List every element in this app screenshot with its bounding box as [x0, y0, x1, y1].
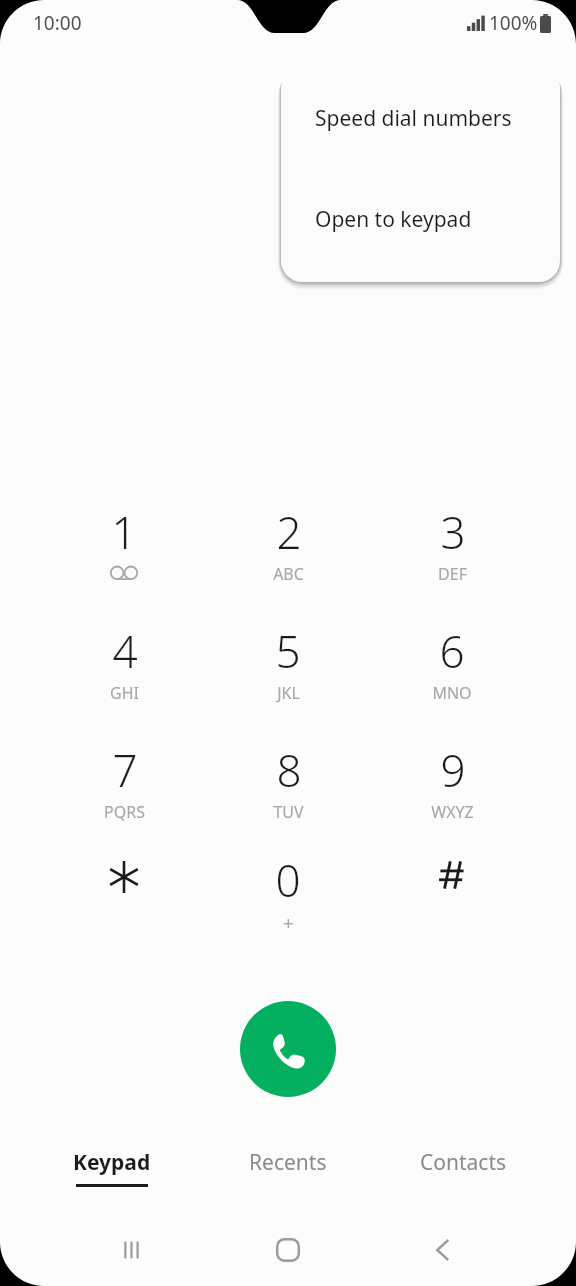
staticText: 5 [275, 621, 301, 681]
staticText: 0 [275, 850, 301, 910]
staticText: TUV [273, 801, 304, 823]
button[interactable]: Settings [281, 234, 560, 282]
staticText: 1 [111, 502, 137, 562]
button[interactable]: Back [415, 1222, 471, 1278]
staticText: 10:00 [33, 10, 82, 36]
button[interactable]: Pound [377, 850, 527, 962]
button[interactable]: 0 [213, 850, 363, 962]
staticText: 3 [440, 502, 466, 562]
button[interactable]: Home [260, 1222, 316, 1278]
staticText: DEF [438, 563, 467, 585]
staticText: 4 [112, 621, 138, 681]
button[interactable]: 3 [377, 502, 527, 614]
staticText: 100% [489, 10, 538, 36]
staticText: WXYZ [431, 801, 474, 823]
button[interactable]: 2 [213, 502, 363, 614]
button[interactable]: 4 [49, 621, 199, 733]
staticText: Open to keypad [315, 205, 472, 234]
staticText: 9 [440, 740, 466, 800]
button[interactable]: 9 [377, 740, 527, 852]
button[interactable]: 5 [213, 621, 363, 733]
button[interactable]: Star [49, 850, 199, 962]
button[interactable]: Contacts [375, 1148, 551, 1206]
button[interactable]: Recents [200, 1148, 376, 1206]
staticText: ABC [273, 563, 304, 585]
button[interactable]: 7 [49, 740, 199, 852]
staticText: + [283, 911, 294, 936]
button[interactable]: 6 [377, 621, 527, 733]
button[interactable]: Keypad [24, 1148, 200, 1206]
button[interactable]: 8 [213, 740, 363, 852]
staticText: Contacts [420, 1148, 507, 1177]
button[interactable]: Speed dial numbers [281, 66, 560, 133]
staticText: 2 [276, 502, 302, 562]
staticText: PQRS [104, 801, 145, 823]
button[interactable]: Call [240, 1001, 336, 1097]
staticText: 7 [112, 740, 138, 800]
staticText: 8 [276, 740, 302, 800]
staticText: Speed dial numbers [315, 104, 512, 133]
button[interactable]: Recents [105, 1222, 161, 1278]
staticText: Recents [249, 1148, 327, 1177]
staticText: 6 [439, 621, 465, 681]
staticText: MNO [432, 682, 472, 704]
button[interactable]: 1 [49, 502, 199, 614]
staticText: Keypad [73, 1148, 151, 1177]
staticText: JKL [277, 682, 300, 704]
button[interactable]: Open to keypad [281, 133, 560, 234]
staticText: GHI [110, 682, 139, 704]
